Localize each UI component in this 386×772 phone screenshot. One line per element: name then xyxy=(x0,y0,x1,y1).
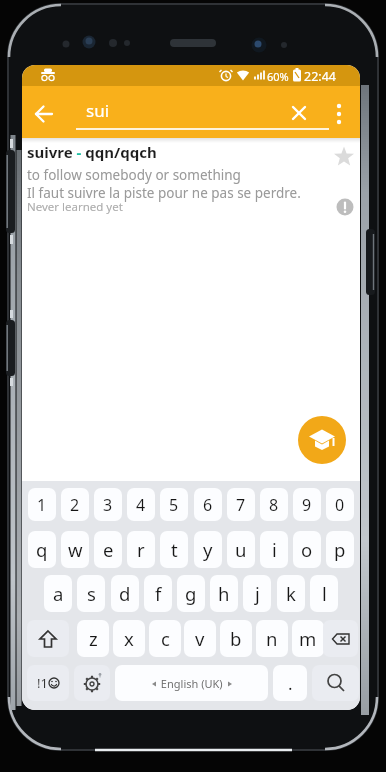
button[interactable]: 8 xyxy=(260,488,288,521)
button[interactable] xyxy=(328,140,360,172)
button[interactable]: r xyxy=(127,531,155,568)
staticText: u xyxy=(235,537,247,562)
button[interactable] xyxy=(27,620,69,657)
staticText: i xyxy=(272,537,277,562)
staticText: v xyxy=(195,626,205,651)
staticText: w xyxy=(68,537,83,562)
staticText: . xyxy=(288,672,293,695)
staticText: 2 xyxy=(70,494,80,516)
staticText: 7 xyxy=(236,494,246,516)
button[interactable]: j xyxy=(243,575,271,612)
button[interactable]: 6 xyxy=(194,488,222,521)
staticText: t xyxy=(171,537,178,562)
staticText: 0 xyxy=(335,494,345,516)
button[interactable]: y xyxy=(194,531,222,568)
staticText: o xyxy=(301,537,313,562)
staticText: z xyxy=(89,626,98,651)
staticText: f xyxy=(155,581,162,606)
staticText: b xyxy=(230,626,242,651)
staticText: m xyxy=(299,626,317,651)
staticText: d xyxy=(119,581,131,606)
button[interactable]: 1 xyxy=(28,488,56,521)
button[interactable] xyxy=(22,138,360,220)
staticText: English (UK) xyxy=(158,676,226,691)
button[interactable]: 7 xyxy=(227,488,255,521)
staticText: 1 xyxy=(37,494,47,516)
button[interactable]: q xyxy=(28,531,56,568)
staticText: g xyxy=(185,581,197,606)
staticText: r xyxy=(137,537,145,562)
button[interactable]: x xyxy=(113,620,145,657)
button[interactable]: 3 xyxy=(94,488,122,521)
staticText: c xyxy=(161,626,170,651)
staticText: k xyxy=(286,581,296,606)
button[interactable]: z xyxy=(77,620,109,657)
button[interactable]: w xyxy=(61,531,89,568)
staticText: 22:44 xyxy=(304,68,336,85)
button[interactable] xyxy=(74,665,110,701)
button[interactable]: v xyxy=(184,620,216,657)
button[interactable]: c xyxy=(149,620,181,657)
button[interactable]: 5 xyxy=(160,488,188,521)
staticText: l xyxy=(322,581,327,606)
staticText: Il faut suivre la piste pour ne pas se p… xyxy=(27,184,301,202)
staticText: e xyxy=(103,537,114,562)
button[interactable] xyxy=(312,665,359,701)
button[interactable]: l xyxy=(310,575,338,612)
button[interactable] xyxy=(325,98,353,130)
staticText: q xyxy=(36,537,48,562)
button[interactable]: a xyxy=(44,575,72,612)
button[interactable] xyxy=(329,191,360,223)
button[interactable]: u xyxy=(227,531,255,568)
staticText: suivre - qqn/qqch xyxy=(27,142,157,162)
button[interactable]: p xyxy=(326,531,354,568)
button[interactable]: s xyxy=(77,575,105,612)
staticText: 9 xyxy=(302,494,312,516)
button[interactable]: 9 xyxy=(293,488,321,521)
button[interactable]: t xyxy=(160,531,188,568)
button[interactable] xyxy=(323,620,358,657)
button[interactable]: 4 xyxy=(127,488,155,521)
staticText: y xyxy=(203,537,213,562)
button[interactable] xyxy=(298,416,346,464)
staticText: 5 xyxy=(169,494,179,516)
button[interactable]: n xyxy=(256,620,288,657)
staticText: n xyxy=(266,626,278,651)
button[interactable] xyxy=(28,98,60,130)
staticText: 3 xyxy=(103,494,113,516)
staticText: 60% xyxy=(267,69,289,84)
staticText: p xyxy=(334,537,346,562)
staticText: x xyxy=(124,626,134,651)
staticText: 4 xyxy=(136,494,146,516)
button[interactable]: 0 xyxy=(326,488,354,521)
staticText: j xyxy=(255,581,260,606)
staticText: a xyxy=(53,581,64,606)
button[interactable]: k xyxy=(277,575,305,612)
button[interactable]: . xyxy=(273,665,307,701)
button[interactable]: d xyxy=(111,575,139,612)
button[interactable]: g xyxy=(177,575,205,612)
button[interactable] xyxy=(76,90,271,132)
button[interactable]: o xyxy=(293,531,321,568)
staticText: h xyxy=(218,581,230,606)
button[interactable]: f xyxy=(144,575,172,612)
staticText: 6 xyxy=(203,494,213,516)
staticText: 8 xyxy=(269,494,279,516)
button[interactable]: 2 xyxy=(61,488,89,521)
button[interactable]: b xyxy=(220,620,252,657)
staticText: to follow somebody or something xyxy=(27,166,241,184)
button[interactable]: h xyxy=(210,575,238,612)
button[interactable]: i xyxy=(260,531,288,568)
button[interactable]: m xyxy=(292,620,324,657)
button[interactable]: e xyxy=(94,531,122,568)
button[interactable]: !1 xyxy=(27,665,69,701)
button[interactable]: English (UK) xyxy=(115,665,268,701)
staticText: !1 xyxy=(37,674,48,692)
staticText: s xyxy=(87,581,96,606)
staticText: sui xyxy=(86,99,110,122)
staticText: Never learned yet xyxy=(27,199,123,215)
button[interactable] xyxy=(283,97,315,129)
